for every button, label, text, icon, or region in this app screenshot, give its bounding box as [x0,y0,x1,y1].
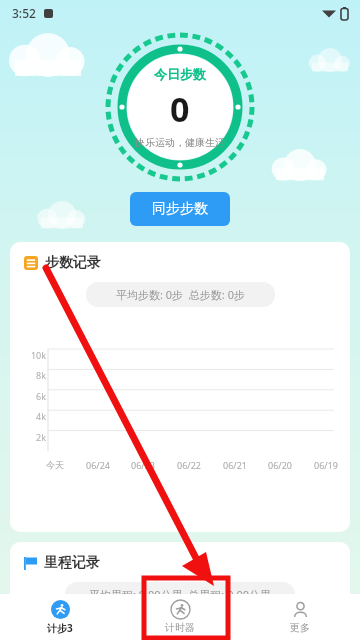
staticText: 06/22 [177,459,201,471]
staticText: 今天 [46,459,64,470]
staticText: 06/21 [223,459,247,471]
staticText: 计时器 [165,621,195,634]
button[interactable]: 更多 [240,594,360,640]
staticText: 4k [22,410,46,422]
staticText: 0 [170,86,190,132]
staticText: 2k [22,431,46,443]
staticText: 8k [22,369,46,381]
button[interactable]: 同步步数 [130,192,230,226]
staticText: 平均步数: 0步 总步数: 0步 [116,287,245,302]
staticText: 06/20 [268,459,292,471]
button[interactable]: 计步3 [0,594,120,640]
staticText: 平均里程: 0.00公里 总里程: 0.00公里 [89,587,271,602]
staticText: 里程记录 [44,554,100,572]
staticText: 3:52 [12,5,36,21]
staticText: 6k [22,390,46,402]
staticText: 同步步数 [152,200,208,218]
staticText: 10k [22,349,46,361]
staticText: 今日步数 [154,66,206,82]
staticText: 06/19 [314,459,338,471]
staticText: 06/23 [131,459,155,471]
staticText: 更多 [290,621,310,634]
button[interactable]: 计时器 [120,594,240,640]
staticText: 快乐运动，健康生活 [135,136,225,149]
staticText: 06/24 [86,459,110,471]
staticText: 计步3 [47,621,73,635]
staticText: 步数记录 [45,254,101,272]
